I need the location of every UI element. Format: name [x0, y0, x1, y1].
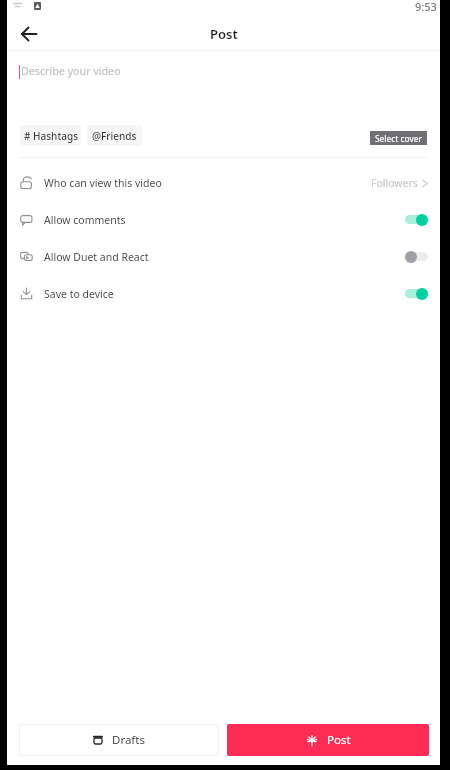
staticText: Allow Duet and React: [44, 250, 149, 264]
staticText: Drafts: [112, 732, 145, 748]
staticText: # Hashtags: [24, 129, 78, 143]
staticText: Save to device: [44, 287, 114, 301]
button[interactable]: Toggle on: [405, 213, 428, 226]
button[interactable]: Back: [15, 19, 43, 49]
staticText: Post: [210, 25, 238, 43]
button[interactable]: Allow comments: [19, 201, 428, 238]
button[interactable]: Post: [227, 724, 429, 756]
button[interactable]: Drafts: [19, 724, 219, 756]
staticText: 9:53: [415, 0, 437, 14]
button[interactable]: Allow Duet and React: [19, 238, 428, 275]
button[interactable]: @Friends: [87, 125, 142, 146]
button[interactable]: Who can view this video: [19, 164, 428, 201]
button[interactable]: Toggle off: [405, 250, 428, 263]
staticText: Select cover: [375, 133, 422, 144]
staticText: Post: [327, 732, 351, 748]
button[interactable]: # Hashtags: [20, 125, 81, 146]
button[interactable]: Save to device: [19, 275, 428, 312]
staticText: Who can view this video: [44, 176, 162, 190]
staticText: Followers: [371, 176, 418, 190]
staticText: Allow comments: [44, 213, 126, 227]
button[interactable]: Select cover: [370, 131, 427, 145]
staticText: Describe your video: [21, 64, 121, 79]
button[interactable]: Toggle on: [405, 287, 428, 300]
staticText: @Friends: [92, 129, 137, 143]
